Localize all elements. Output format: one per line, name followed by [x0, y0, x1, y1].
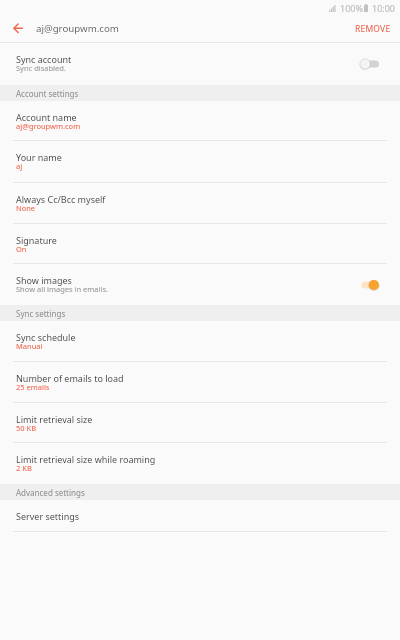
button[interactable]: Show images: [0, 264, 400, 305]
staticText: Account settings: [16, 88, 79, 99]
staticText: Limit retrieval size: [16, 413, 93, 425]
staticText: Show all images in emails.: [16, 284, 108, 294]
button[interactable]: Sync schedule: [0, 321, 400, 362]
staticText: aj@groupwm.com: [16, 121, 81, 131]
staticText: Sync settings: [16, 308, 66, 319]
staticText: 100%: [340, 2, 363, 14]
button[interactable]: Sync account: [0, 43, 400, 85]
staticText: REMOVE: [355, 23, 391, 35]
staticText: Always Cc/Bcc myself: [16, 193, 106, 205]
staticText: Sync schedule: [16, 331, 76, 343]
staticText: 10:00: [372, 2, 396, 14]
staticText: On: [16, 244, 27, 254]
staticText: Sync account: [16, 53, 72, 65]
staticText: 50 KB: [16, 423, 37, 433]
staticText: None: [16, 203, 36, 213]
staticText: aj@groupwm.com: [36, 22, 119, 35]
staticText: aj: [16, 161, 23, 171]
button[interactable]: REMOVE: [343, 17, 400, 41]
staticText: Signature: [16, 234, 57, 246]
button[interactable]: Always Cc/Bcc myself: [0, 183, 400, 224]
staticText: 2 KB: [16, 463, 32, 473]
button[interactable]: Number of emails to load: [0, 362, 400, 403]
button[interactable]: Navigate up: [5, 16, 31, 42]
button[interactable]: Signature: [0, 224, 400, 264]
staticText: Number of emails to load: [16, 372, 124, 384]
button[interactable]: Limit retrieval size while roaming: [0, 443, 400, 484]
staticText: 25 emails: [16, 382, 50, 392]
staticText: Server settings: [16, 510, 80, 522]
staticText: Show images: [16, 274, 72, 286]
staticText: Advanced settings: [16, 487, 85, 498]
staticText: Your name: [16, 151, 62, 163]
button[interactable]: Your name: [0, 141, 400, 183]
button[interactable]: Account name: [0, 101, 400, 141]
staticText: Account name: [16, 111, 77, 123]
button[interactable]: Show images: [360, 279, 379, 291]
button[interactable]: Server settings: [0, 500, 400, 532]
staticText: Manual: [16, 341, 43, 351]
staticText: Limit retrieval size while roaming: [16, 453, 156, 465]
staticText: Sync disabled.: [16, 63, 66, 73]
button[interactable]: Limit retrieval size: [0, 403, 400, 443]
button[interactable]: Sync account: [360, 58, 379, 70]
